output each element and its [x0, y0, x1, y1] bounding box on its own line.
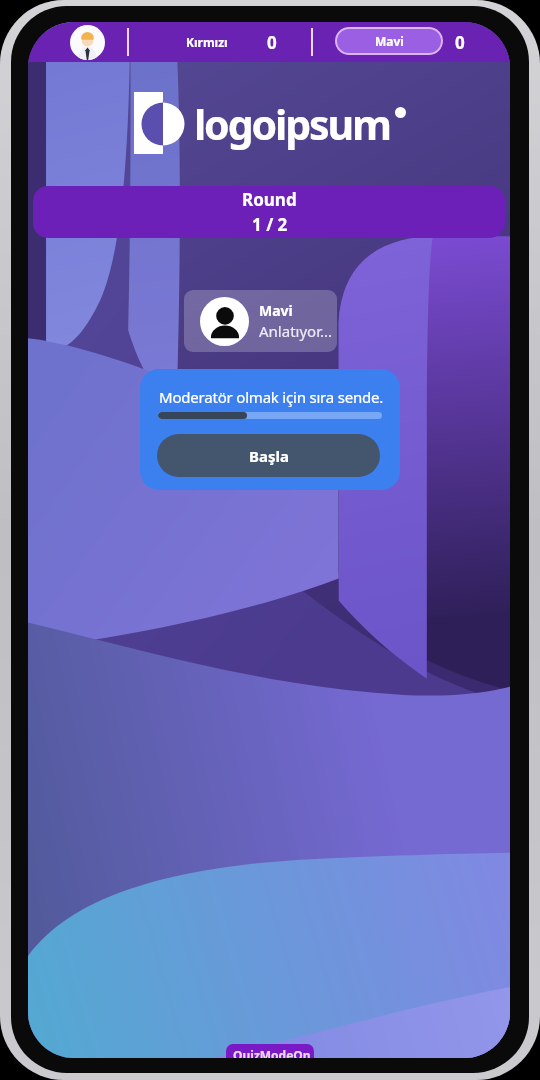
staticText: Mavi	[259, 301, 293, 320]
staticText: 1 / 2	[252, 213, 288, 236]
staticText: Mavi	[375, 33, 404, 49]
button[interactable]: Mavi	[184, 290, 337, 352]
staticText: Başla	[249, 446, 289, 466]
button[interactable]: QuizModeOn	[226, 1044, 314, 1058]
staticText: Anlatıyor...	[259, 321, 333, 341]
staticText: QuizModeOn	[233, 1047, 311, 1058]
staticText: logoipsum	[194, 96, 390, 152]
button[interactable]: Profile	[70, 25, 105, 60]
staticText: 0	[455, 31, 465, 54]
staticText: Kırmızı	[186, 34, 228, 50]
staticText: Moderatör olmak için sıra sende.	[159, 387, 384, 407]
staticText: Round	[242, 188, 297, 211]
button[interactable]: Başla	[157, 434, 380, 477]
button[interactable]: Round	[33, 186, 505, 238]
staticText: 0	[267, 31, 277, 54]
button[interactable]: Mavi	[335, 27, 443, 55]
